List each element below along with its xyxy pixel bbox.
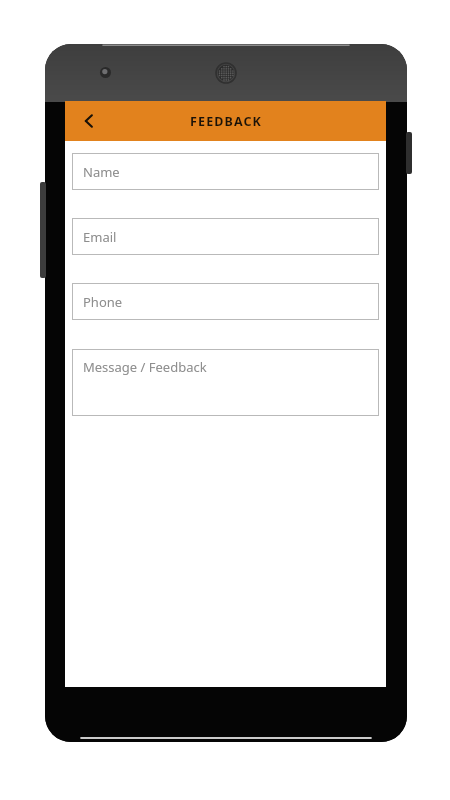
staticText: Message / Feedback — [83, 358, 207, 376]
button[interactable]: Email — [72, 218, 379, 255]
staticText: Email — [83, 228, 117, 246]
button[interactable]: Phone — [72, 283, 379, 320]
other: Volume — [40, 182, 46, 278]
button[interactable]: Back — [71, 101, 107, 141]
button[interactable]: Message / Feedback — [72, 349, 379, 416]
button[interactable]: Name — [72, 153, 379, 190]
staticText: Phone — [83, 293, 123, 311]
staticText: Name — [83, 163, 120, 181]
staticText: FEEDBACK — [190, 113, 262, 130]
other: Power — [406, 132, 412, 174]
